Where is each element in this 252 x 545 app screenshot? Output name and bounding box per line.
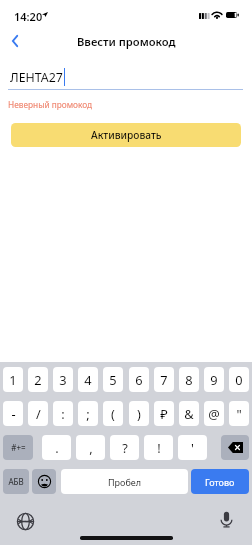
staticText: 3 xyxy=(59,371,67,388)
button[interactable]: ₽ xyxy=(154,401,174,426)
staticText: 7 xyxy=(160,371,168,388)
button[interactable]: 6 xyxy=(129,367,149,392)
button[interactable]: Back xyxy=(2,28,28,54)
button[interactable]: Emoji xyxy=(32,469,56,494)
button[interactable]: Change language xyxy=(14,510,36,532)
staticText: ЛЕНТА27 xyxy=(10,69,63,86)
button[interactable]: ' xyxy=(178,435,207,460)
button[interactable]: Backspace xyxy=(221,435,249,460)
button[interactable]: АБВ xyxy=(3,469,29,494)
button[interactable]: 5 xyxy=(103,367,123,392)
staticText: Активировать xyxy=(91,128,162,142)
staticText: 9 xyxy=(210,371,218,388)
button[interactable]: 0 xyxy=(229,367,249,392)
button[interactable]: 2 xyxy=(28,367,48,392)
button[interactable]: / xyxy=(28,401,48,426)
button[interactable]: 4 xyxy=(78,367,98,392)
staticText: Пробел xyxy=(108,476,142,488)
staticText: 6 xyxy=(135,371,143,388)
staticText: ; xyxy=(86,405,90,422)
staticText: ) xyxy=(137,405,141,422)
staticText: ? xyxy=(122,439,128,456)
button[interactable]: ! xyxy=(144,435,173,460)
button[interactable]: . xyxy=(42,435,71,460)
button[interactable]: , xyxy=(76,435,105,460)
staticText: 2 xyxy=(34,371,42,388)
staticText: ₽ xyxy=(160,405,168,422)
staticText: . xyxy=(55,439,59,456)
staticText: Ввести промокод xyxy=(77,34,176,49)
button[interactable]: ? xyxy=(110,435,139,460)
button[interactable]: " xyxy=(229,401,249,426)
staticText: " xyxy=(236,405,242,422)
button[interactable]: 1 xyxy=(3,367,23,392)
button[interactable]: Пробел xyxy=(61,469,188,494)
button[interactable]: Активировать xyxy=(11,123,241,147)
staticText: АБВ xyxy=(8,476,24,487)
staticText: Готово xyxy=(205,476,235,488)
button[interactable]: & xyxy=(179,401,199,426)
staticText: / xyxy=(36,405,41,422)
button[interactable]: #+= xyxy=(3,435,33,460)
staticText: 0 xyxy=(235,371,243,388)
staticText: , xyxy=(89,439,93,456)
button[interactable]: 9 xyxy=(204,367,224,392)
staticText: 14:20 xyxy=(14,9,43,24)
button[interactable]: 3 xyxy=(53,367,73,392)
button[interactable]: ; xyxy=(78,401,98,426)
button[interactable]: 7 xyxy=(154,367,174,392)
staticText: ( xyxy=(111,405,115,422)
button[interactable]: Готово xyxy=(191,469,249,494)
staticText: 1 xyxy=(9,371,17,388)
staticText: ! xyxy=(157,439,161,456)
staticText: #+= xyxy=(11,442,26,453)
staticText: 5 xyxy=(109,371,117,388)
button[interactable]: 8 xyxy=(179,367,199,392)
staticText: - xyxy=(11,405,16,422)
staticText: ' xyxy=(191,439,194,456)
staticText: Неверный промокод xyxy=(8,99,93,110)
button[interactable]: @ xyxy=(204,401,224,426)
staticText: 4 xyxy=(84,371,92,388)
button[interactable]: - xyxy=(3,401,23,426)
button[interactable]: Dictation xyxy=(215,508,237,530)
staticText: & xyxy=(184,405,194,422)
button[interactable]: ( xyxy=(103,401,123,426)
staticText: 8 xyxy=(185,371,193,388)
button[interactable]: : xyxy=(53,401,73,426)
button[interactable]: ) xyxy=(129,401,149,426)
staticText: : xyxy=(61,405,65,422)
staticText: @ xyxy=(208,405,220,422)
